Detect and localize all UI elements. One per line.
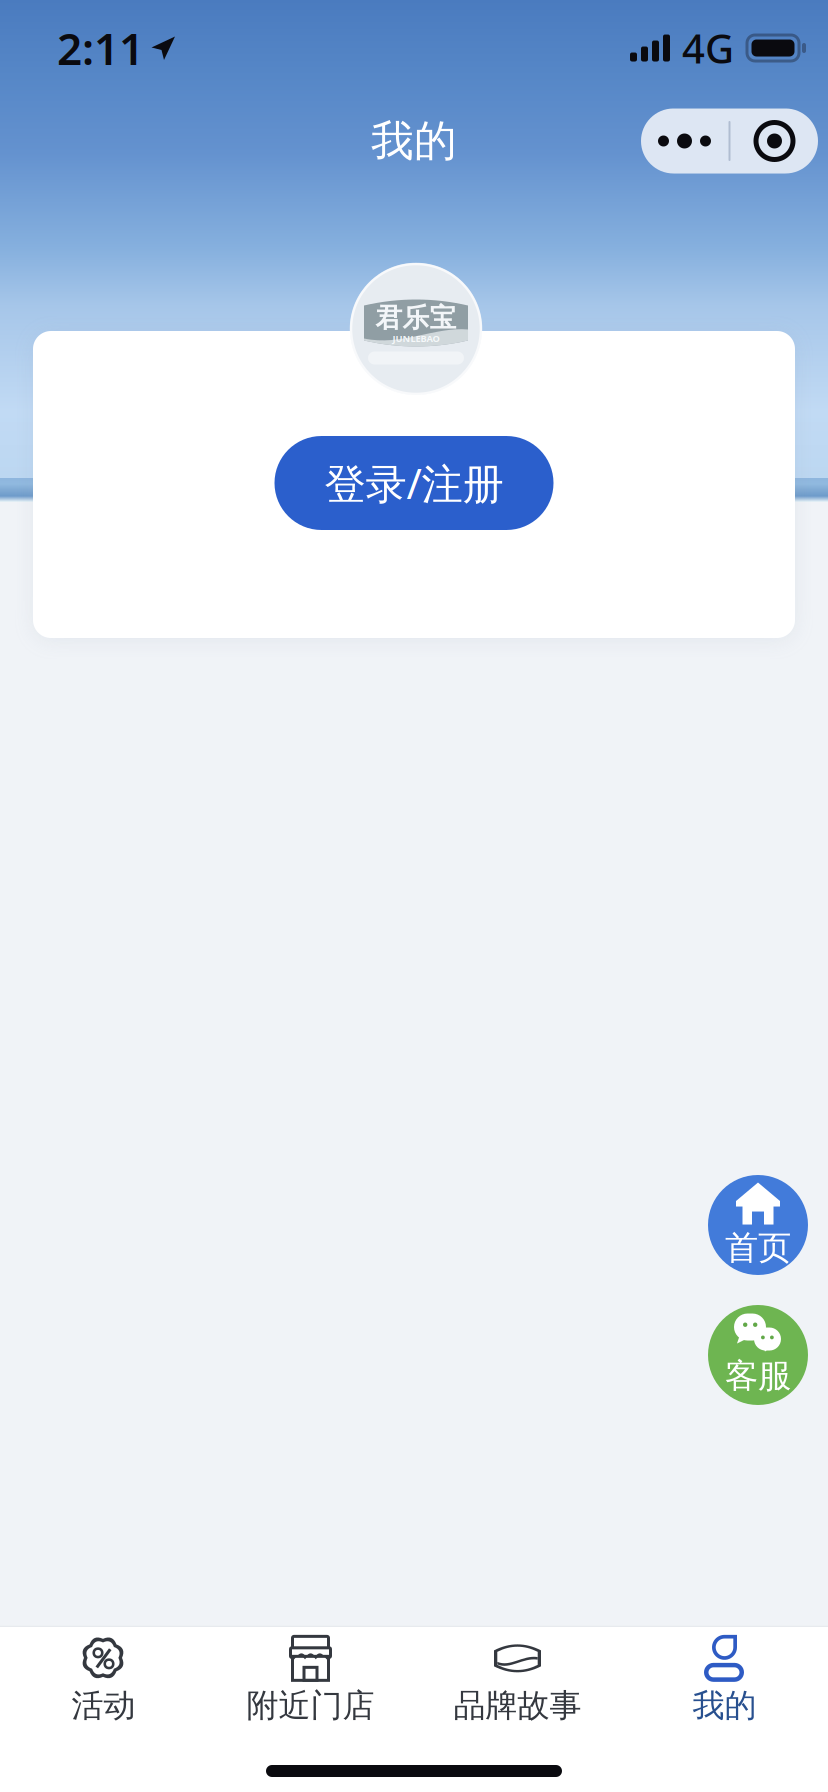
staticText: 首页 <box>725 1227 791 1268</box>
button[interactable]: 首页 <box>708 1175 808 1275</box>
button[interactable]: Close mini program <box>730 108 818 173</box>
button[interactable]: 附近门店 <box>207 1627 414 1730</box>
button[interactable]: 我的 <box>621 1627 828 1730</box>
button[interactable]: 活动 <box>0 1627 207 1730</box>
staticText: 4G <box>682 21 734 74</box>
button[interactable]: More options <box>640 108 728 173</box>
staticText: 君乐宝 <box>375 301 456 334</box>
staticText: JUNLEBAO <box>392 332 439 345</box>
staticText: 活动 <box>71 1686 135 1725</box>
staticText: 品牌故事 <box>453 1686 581 1725</box>
staticText: 附近门店 <box>246 1686 374 1725</box>
button[interactable]: 客服 <box>708 1305 808 1405</box>
staticText: 我的 <box>371 115 457 167</box>
button[interactable]: 登录/注册 <box>274 436 553 530</box>
staticText: 2:11 <box>57 19 144 77</box>
staticText: 登录/注册 <box>324 456 503 510</box>
staticText: 我的 <box>692 1686 756 1725</box>
staticText: 客服 <box>725 1355 791 1396</box>
button[interactable]: 品牌故事 <box>414 1627 621 1730</box>
